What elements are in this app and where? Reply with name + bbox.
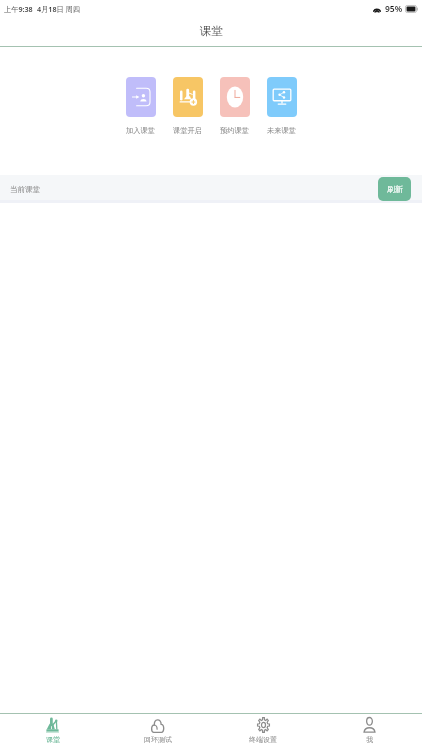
button[interactable]: 预约课堂 [211, 77, 258, 135]
button[interactable]: 加入课堂 [117, 77, 164, 135]
staticText: 终端设置 [249, 735, 277, 744]
staticText: 回环测试 [144, 735, 172, 744]
staticText: 当前课堂 [10, 185, 40, 194]
button[interactable]: 课堂开启 [164, 77, 211, 135]
staticText: 预约课堂 [220, 126, 249, 135]
staticText: 未来课堂 [267, 126, 296, 135]
staticText: 刷新 [387, 184, 403, 194]
button[interactable]: 我 [316, 714, 422, 750]
staticText: 上午9:38 [4, 4, 33, 14]
staticText: 我 [366, 735, 373, 744]
staticText: 课堂 [46, 735, 60, 744]
staticText: 加入课堂 [126, 126, 155, 135]
staticText: 课堂开启 [173, 126, 202, 135]
staticText: 4月18日 周四 [37, 4, 80, 14]
button[interactable]: 课堂 [0, 714, 105, 750]
button[interactable]: 回环测试 [105, 714, 210, 750]
button[interactable]: 终端设置 [210, 714, 316, 750]
button[interactable]: 未来课堂 [258, 77, 305, 135]
staticText: 95% [385, 3, 403, 15]
button[interactable]: 刷新 [378, 177, 411, 201]
staticText: 课堂 [200, 24, 223, 38]
